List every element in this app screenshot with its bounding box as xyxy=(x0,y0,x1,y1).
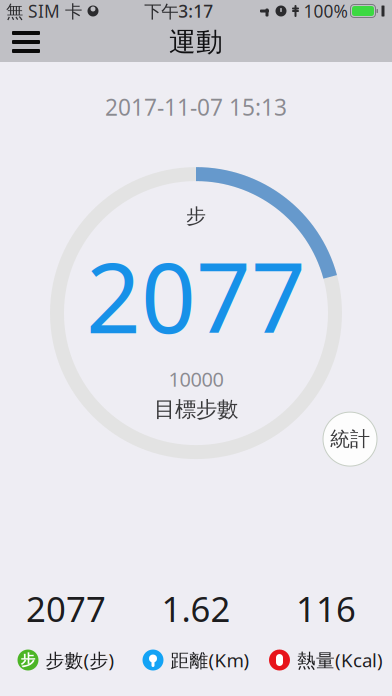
staticText: 2077 xyxy=(86,232,306,360)
staticText: 運動 xyxy=(169,26,223,58)
staticText: 步 xyxy=(20,651,35,669)
staticText: 100% xyxy=(303,0,347,22)
staticText: 2017-11-07 15:13 xyxy=(105,92,287,122)
button[interactable]: 2077 xyxy=(1,590,131,668)
button[interactable]: 116 xyxy=(261,590,391,668)
staticText: 無 SIM 卡 xyxy=(6,0,82,22)
staticText: 2077 xyxy=(26,586,106,632)
button[interactable]: Menu xyxy=(2,22,50,62)
staticText: 1.62 xyxy=(161,586,230,632)
staticText: 步 xyxy=(186,204,206,228)
staticText: 116 xyxy=(296,586,356,632)
staticText: 10000 xyxy=(168,366,223,392)
staticText: 統計 xyxy=(330,427,370,451)
button[interactable]: 1.62 xyxy=(131,590,261,668)
staticText: 距離(Km) xyxy=(170,648,249,672)
staticText: 步數(步) xyxy=(45,648,114,672)
staticText: 目標步數 xyxy=(154,396,238,422)
button[interactable]: 統計 xyxy=(323,412,377,466)
staticText: 熱量(Kcal) xyxy=(297,648,383,672)
staticText: 下午3:17 xyxy=(144,0,213,22)
